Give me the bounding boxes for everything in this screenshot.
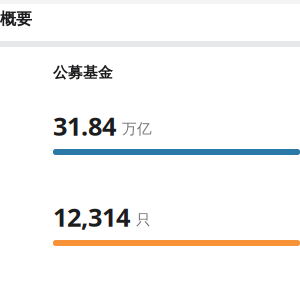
staticText: 概要 [0, 9, 32, 29]
staticText: 只 [136, 211, 151, 229]
button[interactable]: 概要 [0, 4, 300, 41]
staticText: 公募基金 [53, 63, 113, 81]
staticText: 31.84 [53, 109, 116, 143]
staticText: 12,314 [53, 200, 130, 234]
staticText: 万亿 [122, 120, 152, 138]
